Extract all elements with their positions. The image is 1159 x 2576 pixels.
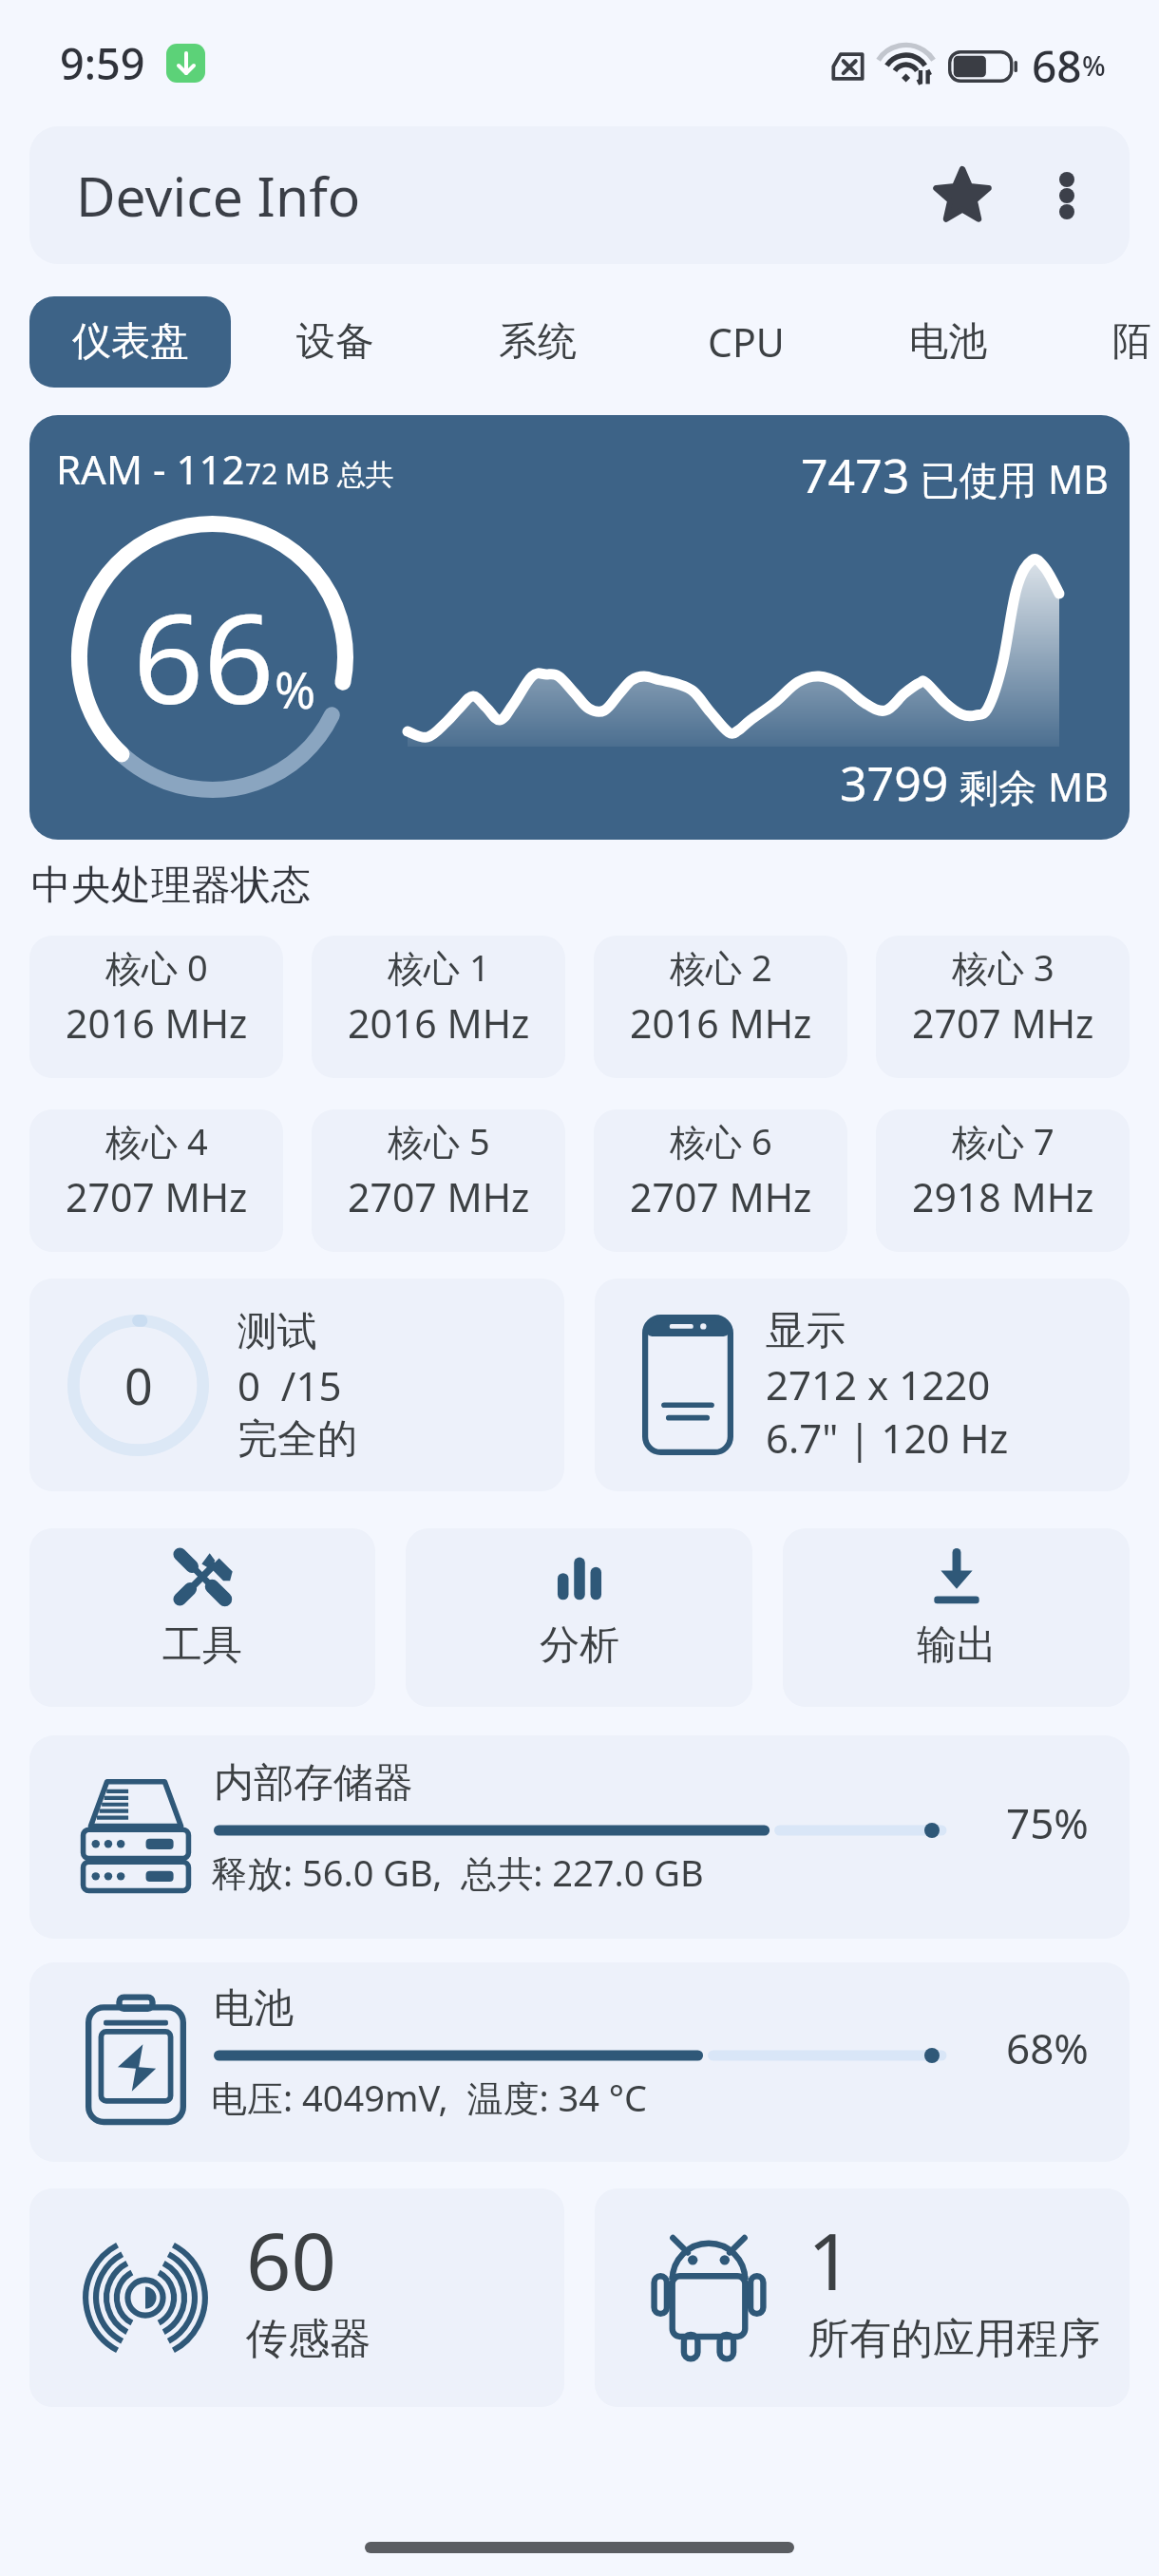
- staticText: 0: [124, 1352, 153, 1419]
- staticText: 核心 4: [105, 1116, 208, 1165]
- button[interactable]: Device Info: [29, 126, 1130, 264]
- staticText: 68%: [1006, 2019, 1089, 2076]
- staticText: 2016 MHz: [630, 996, 812, 1050]
- staticText: 中央处理器状态: [31, 861, 311, 911]
- button[interactable]: 核心 5: [312, 1109, 565, 1252]
- button[interactable]: 工具: [29, 1528, 375, 1707]
- staticText: 68: [1032, 36, 1082, 96]
- staticText: 72 MB 总共: [245, 454, 394, 493]
- staticText: 内部存储器: [214, 1758, 413, 1809]
- staticText: CPU: [708, 315, 785, 369]
- staticText: 2707 MHz: [348, 1170, 530, 1223]
- staticText: 66: [133, 572, 275, 740]
- button[interactable]: 核心 1: [312, 936, 565, 1078]
- staticText: 分析: [540, 1620, 619, 1671]
- button[interactable]: 核心 4: [29, 1109, 283, 1252]
- staticText: 电池: [909, 317, 987, 367]
- button[interactable]: 核心 7: [876, 1109, 1130, 1252]
- staticText: RAM - 112: [56, 442, 245, 496]
- staticText: 2707 MHz: [630, 1170, 812, 1223]
- button[interactable]: 1: [595, 2188, 1130, 2407]
- staticText: 2016 MHz: [348, 996, 530, 1050]
- staticText: 仪表盘: [72, 317, 189, 367]
- staticText: 75%: [1006, 1794, 1089, 1851]
- staticText: 所有的应用程序: [807, 2313, 1100, 2365]
- staticText: 测试 0 /15 完全的: [237, 1307, 357, 1464]
- button[interactable]: CPU: [685, 296, 807, 388]
- staticText: 1: [807, 2206, 853, 2313]
- staticText: MB: [1048, 760, 1109, 813]
- staticText: 7473: [801, 443, 910, 507]
- staticText: 传感器: [246, 2313, 371, 2365]
- button[interactable]: 设备: [274, 296, 397, 388]
- staticText: 设备: [296, 317, 374, 367]
- staticText: 剩余: [949, 760, 1048, 813]
- button[interactable]: 核心 0: [29, 936, 283, 1078]
- staticText: 2707 MHz: [66, 1170, 248, 1223]
- staticText: 核心 3: [952, 942, 1054, 992]
- button[interactable]: 系统: [476, 296, 599, 388]
- button[interactable]: 核心 3: [876, 936, 1130, 1078]
- button[interactable]: 电池: [886, 296, 1010, 388]
- staticText: 9:59: [60, 34, 145, 92]
- button[interactable]: RAM - 112: [29, 415, 1130, 840]
- staticText: 核心 2: [670, 942, 772, 992]
- button[interactable]: 显示 2712 x 1220 6.7" | 120 Hz: [595, 1279, 1130, 1491]
- button[interactable]: 输出: [783, 1528, 1130, 1707]
- staticText: 系统: [499, 317, 577, 367]
- button[interactable]: 仪表盘: [29, 296, 231, 388]
- button[interactable]: 电池: [29, 1962, 1130, 2162]
- staticText: Device Info: [76, 159, 361, 233]
- button[interactable]: More options: [1016, 144, 1118, 247]
- staticText: 2918 MHz: [912, 1170, 1094, 1223]
- staticText: 3799: [840, 750, 949, 815]
- staticText: 电压: 4049mV, 温度: 34 °C: [211, 2073, 648, 2122]
- staticText: 60: [246, 2206, 336, 2313]
- button[interactable]: 内部存储器: [29, 1735, 1130, 1939]
- button[interactable]: 0: [29, 1279, 564, 1491]
- button[interactable]: 60: [29, 2188, 564, 2407]
- staticText: 核心 7: [952, 1116, 1054, 1165]
- button[interactable]: 陌: [1090, 296, 1159, 388]
- staticText: 工具: [162, 1620, 242, 1671]
- staticText: %: [275, 655, 316, 723]
- staticText: 已使用: [910, 452, 1048, 505]
- staticText: 2707 MHz: [912, 996, 1094, 1050]
- staticText: 2016 MHz: [66, 996, 248, 1050]
- staticText: 核心 5: [388, 1116, 490, 1165]
- staticText: 释放: 56.0 GB, 总共: 227.0 GB: [211, 1847, 704, 1897]
- button[interactable]: 核心 6: [594, 1109, 847, 1252]
- staticText: 电池: [214, 1983, 294, 2034]
- staticText: %: [1082, 47, 1106, 84]
- staticText: 显示 2712 x 1220 6.7" | 120 Hz: [766, 1306, 1009, 1465]
- button[interactable]: 核心 2: [594, 936, 847, 1078]
- staticText: 核心 1: [388, 942, 490, 992]
- button[interactable]: 分析: [406, 1528, 752, 1707]
- staticText: 核心 6: [670, 1116, 772, 1165]
- staticText: MB: [1048, 452, 1109, 505]
- staticText: 核心 0: [105, 942, 208, 992]
- staticText: 陌: [1112, 317, 1136, 367]
- button[interactable]: Favorite: [909, 142, 1016, 249]
- staticText: 输出: [917, 1620, 997, 1671]
